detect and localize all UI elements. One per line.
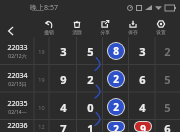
button[interactable]: 撤销 — [35, 15, 63, 37]
staticText: 10 — [38, 104, 45, 111]
staticText: 22036 — [7, 121, 28, 131]
staticText: 分享 — [100, 29, 110, 35]
staticText: 5 — [87, 44, 94, 59]
staticText: 保存 — [128, 29, 138, 35]
staticText: 9 — [60, 72, 67, 87]
button[interactable]: 22035 — [0, 93, 180, 121]
staticText: 22034 — [7, 71, 28, 81]
staticText: 0 — [87, 100, 94, 115]
staticText: 5 — [164, 100, 171, 115]
staticText: 22035 — [7, 99, 28, 109]
staticText: 撤销 — [44, 29, 54, 35]
staticText: 清除 — [72, 29, 82, 35]
button[interactable]: 22034 — [0, 65, 180, 93]
staticText: 22033 — [7, 43, 28, 53]
staticText: 2 — [87, 72, 94, 87]
staticText: 设置 — [156, 29, 166, 35]
staticText: 6 — [164, 121, 171, 132]
staticText: 19 — [38, 76, 45, 83]
button[interactable]: 22033 — [0, 37, 180, 65]
staticText: 5 — [164, 72, 171, 87]
button[interactable]: 分享 — [91, 15, 119, 37]
staticText: 6 — [139, 72, 146, 87]
staticText: 1 — [87, 121, 94, 132]
staticText: 3 — [60, 44, 67, 59]
staticText: 02/14一 — [8, 109, 27, 116]
staticText: 2 — [164, 44, 171, 59]
staticText: 4 — [60, 100, 67, 115]
button[interactable]: 设置 — [147, 15, 175, 37]
staticText: 02/12六 — [8, 53, 27, 60]
staticText: 19 — [38, 48, 45, 55]
staticText: 2 — [113, 122, 119, 131]
button[interactable]: 清除 — [63, 15, 91, 37]
staticText: 2 — [113, 100, 119, 114]
button[interactable]: Back — [0, 23, 21, 39]
staticText: 晚上8:57 — [30, 3, 58, 13]
button[interactable]: 22036 — [0, 121, 180, 132]
staticText: 4 — [139, 100, 146, 115]
staticText: 9 — [140, 122, 146, 131]
staticText: 12 — [38, 123, 45, 130]
staticText: 8 — [113, 44, 119, 58]
staticText: 02/13日 — [8, 81, 27, 88]
staticText: 2 — [113, 72, 119, 86]
staticText: 3 — [139, 44, 146, 59]
button[interactable]: 保存 — [119, 15, 147, 37]
staticText: 7 — [60, 121, 67, 132]
